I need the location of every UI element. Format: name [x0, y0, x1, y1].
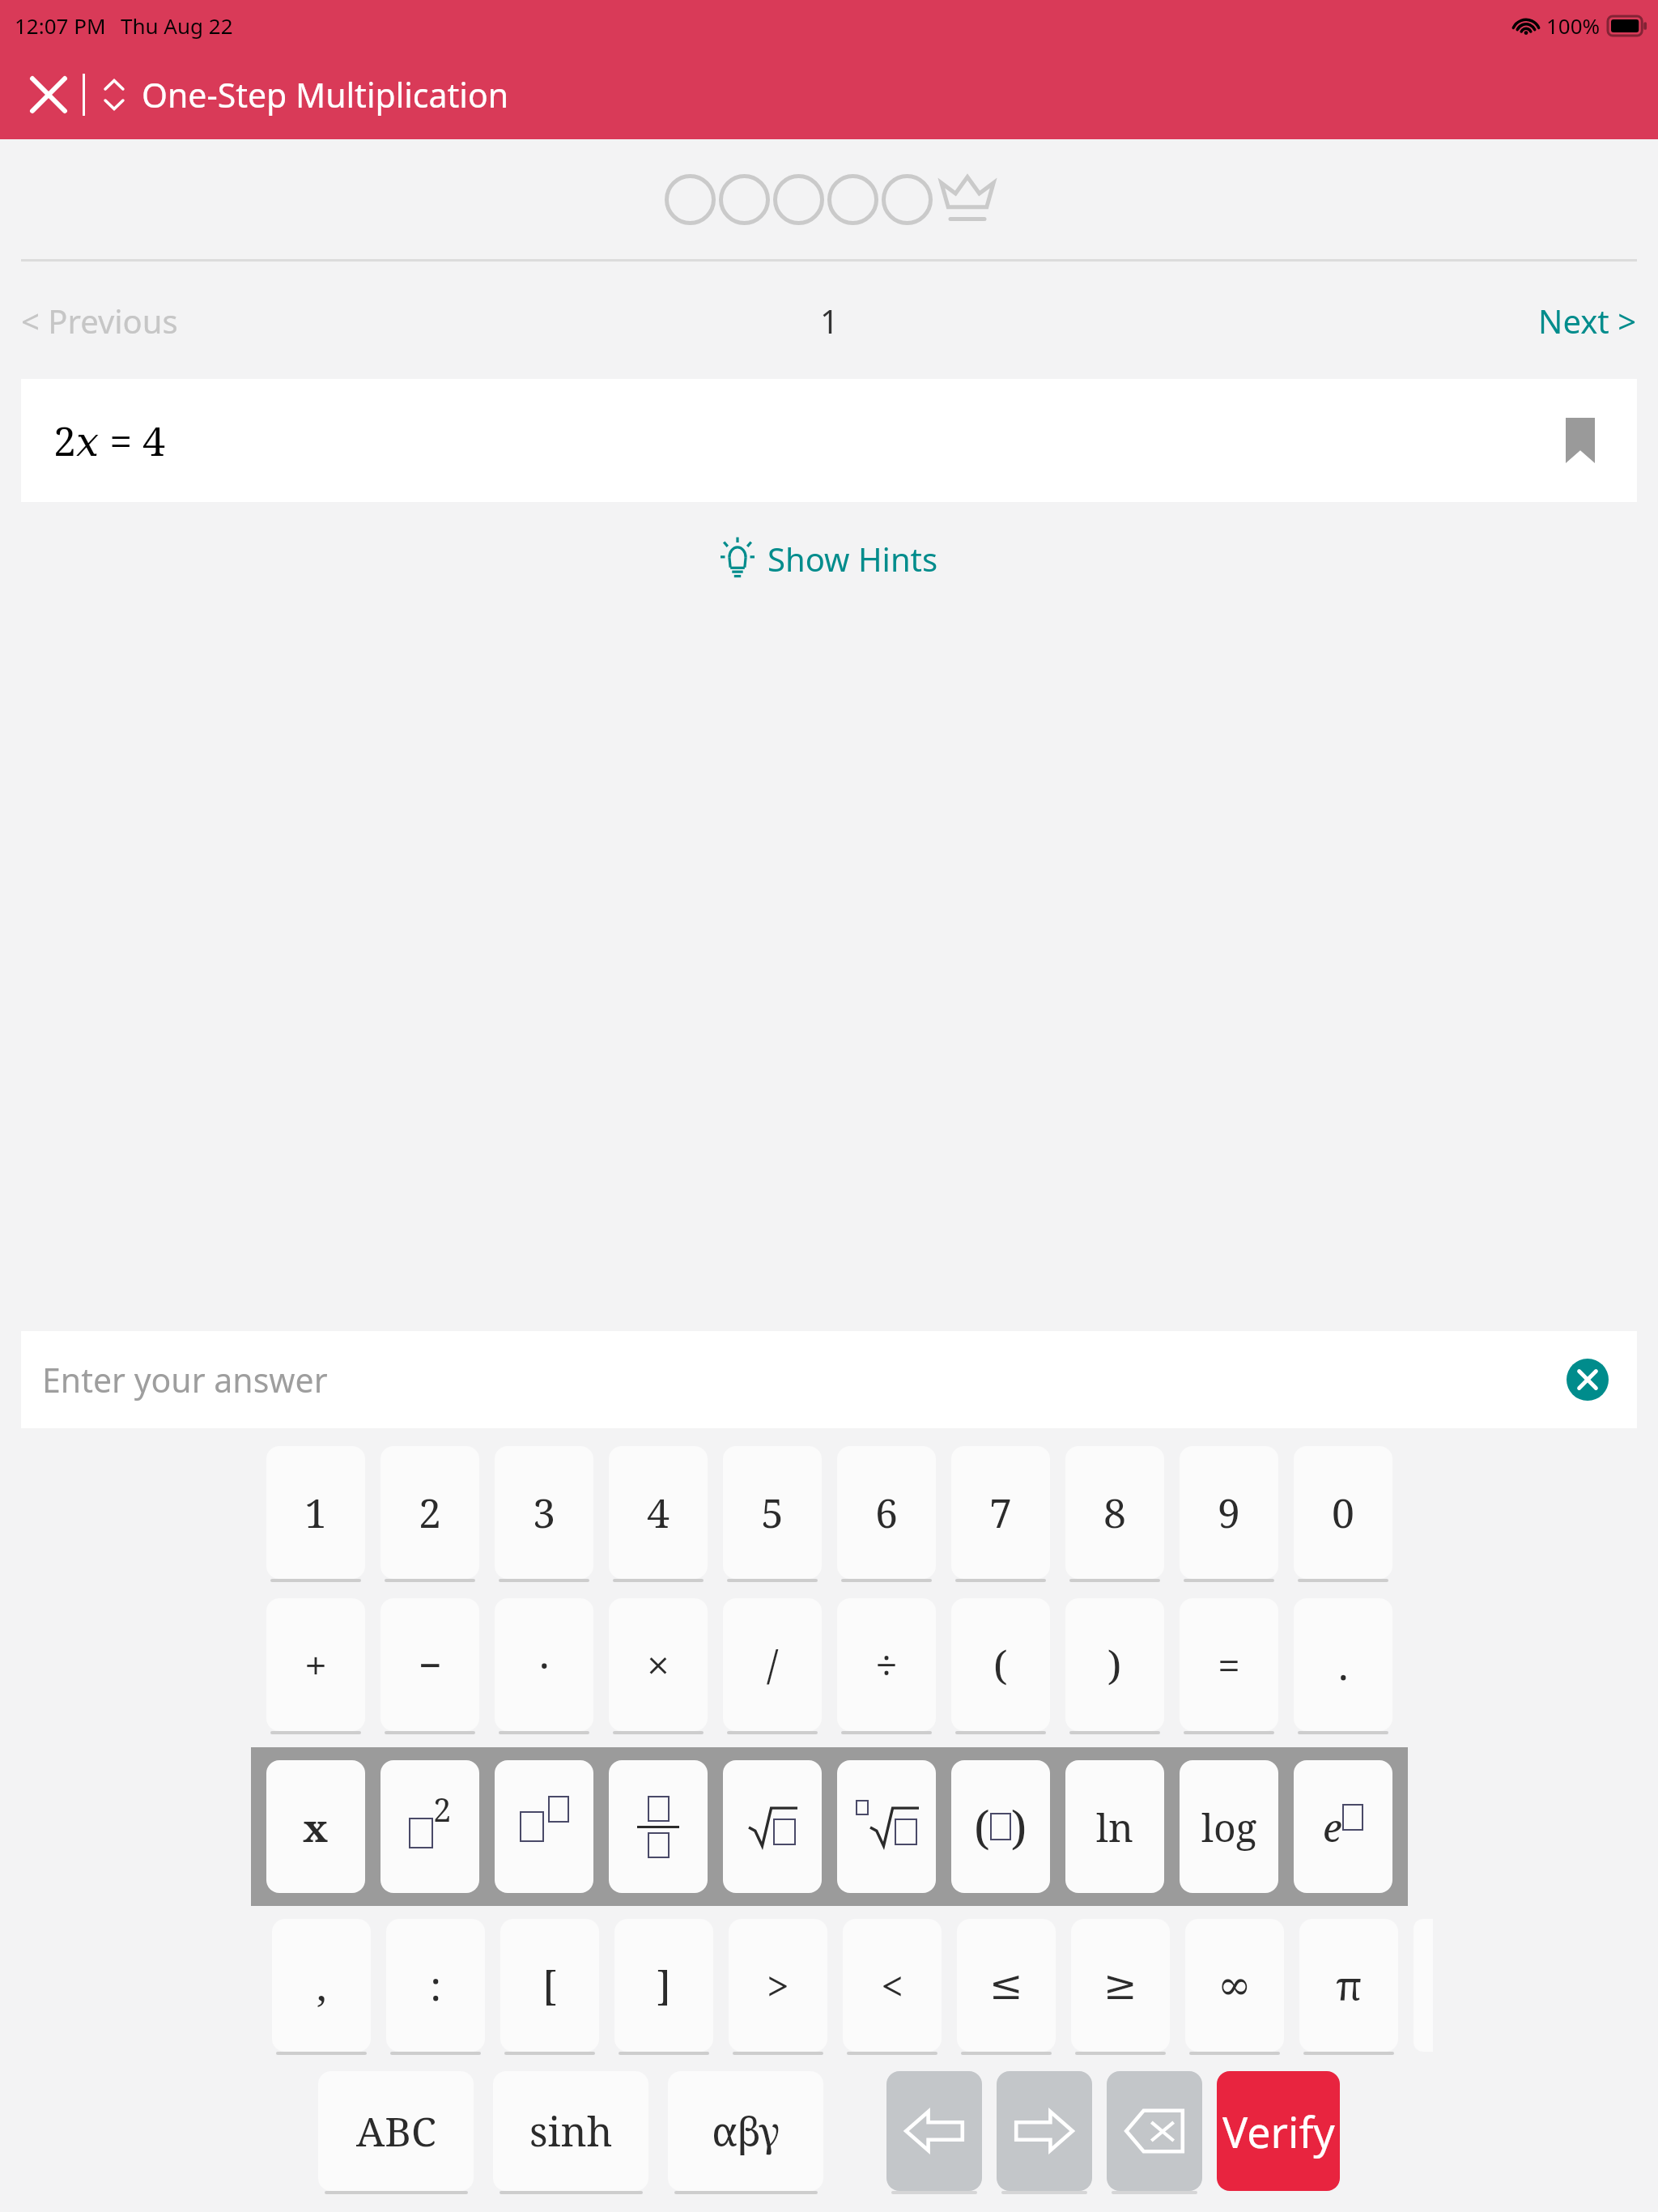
staticText: Next > [1538, 299, 1637, 342]
button[interactable]: − [380, 1598, 479, 1731]
staticText: + [304, 1637, 327, 1692]
staticText: : [430, 1958, 442, 2013]
button[interactable]: ≥ [1071, 1919, 1170, 2052]
staticText: 7 [989, 1485, 1012, 1540]
button[interactable]: sinh [493, 2071, 648, 2191]
staticText: 4 [647, 1485, 670, 1540]
staticText: ABC [356, 2104, 436, 2159]
button[interactable]: e [1294, 1760, 1392, 1893]
staticText: / [767, 1637, 779, 1692]
button[interactable]: 8 [1065, 1446, 1164, 1579]
button[interactable]: / [723, 1598, 822, 1731]
button[interactable]: ÷ [837, 1598, 936, 1731]
staticText: log [1201, 1801, 1257, 1853]
button[interactable]: + [266, 1598, 365, 1731]
button[interactable]: 0 [1294, 1446, 1392, 1579]
button[interactable]: ] [614, 1919, 713, 2052]
button[interactable]: x [266, 1760, 365, 1893]
staticText: αβγ [712, 2104, 780, 2159]
staticText: ≥ [1103, 1962, 1137, 2009]
staticText: [ [542, 1958, 557, 2013]
staticText: 12:07 PM [15, 11, 106, 40]
staticText: e [1323, 1801, 1342, 1853]
staticText: . [1338, 1637, 1349, 1692]
button[interactable] [495, 1760, 593, 1893]
staticText: ∞ [1218, 1962, 1252, 2009]
staticText: 8 [1103, 1485, 1126, 1540]
button[interactable]: Move right [997, 2071, 1092, 2191]
button[interactable]: = [1180, 1598, 1278, 1731]
button[interactable]: ABC [318, 2071, 474, 2191]
staticText: 1 [820, 299, 839, 342]
staticText: 2 [419, 1485, 441, 1540]
button[interactable]: ≤ [957, 1919, 1056, 2052]
staticText: One-Step Multiplication [142, 72, 509, 117]
button[interactable]: ( [951, 1598, 1050, 1731]
button[interactable]: ∞ [1185, 1919, 1284, 2052]
button[interactable]: Enter your answer [21, 1331, 1637, 1428]
staticText: − [419, 1637, 442, 1692]
button[interactable]: 7 [951, 1446, 1050, 1579]
button[interactable]: · [495, 1598, 593, 1731]
button[interactable]: π [1299, 1919, 1398, 2052]
staticText: 2 [433, 1787, 452, 1831]
staticText: 5 [761, 1485, 784, 1540]
button[interactable]: < Previous [0, 281, 199, 360]
button[interactable]: ( [951, 1760, 1050, 1893]
staticText: = [1218, 1637, 1240, 1692]
button[interactable] [609, 1760, 708, 1893]
staticText: Verify [1222, 2103, 1335, 2160]
staticText: x [303, 1801, 329, 1853]
button[interactable]: 9 [1180, 1446, 1278, 1579]
button[interactable]: : [386, 1919, 485, 2052]
button[interactable]: , [272, 1919, 371, 2052]
button[interactable]: 1 [266, 1446, 365, 1579]
staticText: > [767, 1958, 789, 2013]
button[interactable]: Clear answer [1562, 1355, 1613, 1405]
staticText: · [539, 1637, 550, 1692]
button[interactable]: Bookmark [1556, 416, 1605, 465]
button[interactable]: ln [1065, 1760, 1164, 1893]
button[interactable]: . [1294, 1598, 1392, 1731]
staticText: π [1336, 1958, 1363, 2013]
button[interactable]: Move left [886, 2071, 982, 2191]
staticText: ( [993, 1637, 1008, 1692]
button[interactable]: Change lesson [98, 72, 509, 117]
button[interactable]: αβγ [668, 2071, 823, 2191]
button[interactable]: 5 [723, 1446, 822, 1579]
staticText: ) [1011, 1796, 1027, 1857]
button[interactable]: < [843, 1919, 942, 2052]
staticText: Show Hints [767, 537, 938, 581]
staticText: < [881, 1958, 903, 2013]
button[interactable]: 2𝑥 = 4 [21, 379, 1637, 502]
button[interactable]: Verify [1217, 2071, 1340, 2191]
staticText: 3 [533, 1485, 555, 1540]
button[interactable]: [ [500, 1919, 599, 2052]
staticText: Thu Aug 22 [121, 11, 233, 40]
button[interactable] [837, 1760, 936, 1893]
staticText: sinh [529, 2104, 613, 2159]
button[interactable]: 6 [837, 1446, 936, 1579]
staticText: ÷ [875, 1637, 898, 1692]
other: Change lesson [98, 72, 130, 117]
staticText: , [317, 1958, 327, 2013]
button[interactable]: 3 [495, 1446, 593, 1579]
button[interactable]: > [729, 1919, 827, 2052]
staticText: ] [657, 1958, 671, 2013]
button[interactable]: Next > [1517, 281, 1658, 360]
staticText: 6 [875, 1485, 898, 1540]
staticText: Enter your answer [42, 1357, 328, 1402]
button[interactable]: Close [18, 64, 79, 125]
button[interactable]: 2 [380, 1446, 479, 1579]
staticText: 9 [1218, 1485, 1240, 1540]
button[interactable]: ) [1065, 1598, 1164, 1731]
button[interactable]: × [609, 1598, 708, 1731]
staticText: 2𝑥 = 4 [53, 413, 166, 468]
button[interactable]: 4 [609, 1446, 708, 1579]
button[interactable]: 2 [380, 1760, 479, 1893]
button[interactable]: Show Hints [698, 522, 961, 595]
button[interactable]: Backspace [1107, 2071, 1202, 2191]
button[interactable]: log [1180, 1760, 1278, 1893]
button[interactable] [723, 1760, 822, 1893]
